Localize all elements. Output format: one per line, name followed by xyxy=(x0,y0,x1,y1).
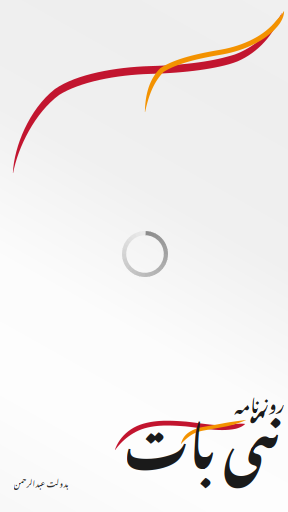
staticText: بدولت عبدالرحمن xyxy=(13,472,68,492)
staticText: نئی بات xyxy=(124,370,278,500)
staticText: روزنامہ xyxy=(234,380,284,423)
